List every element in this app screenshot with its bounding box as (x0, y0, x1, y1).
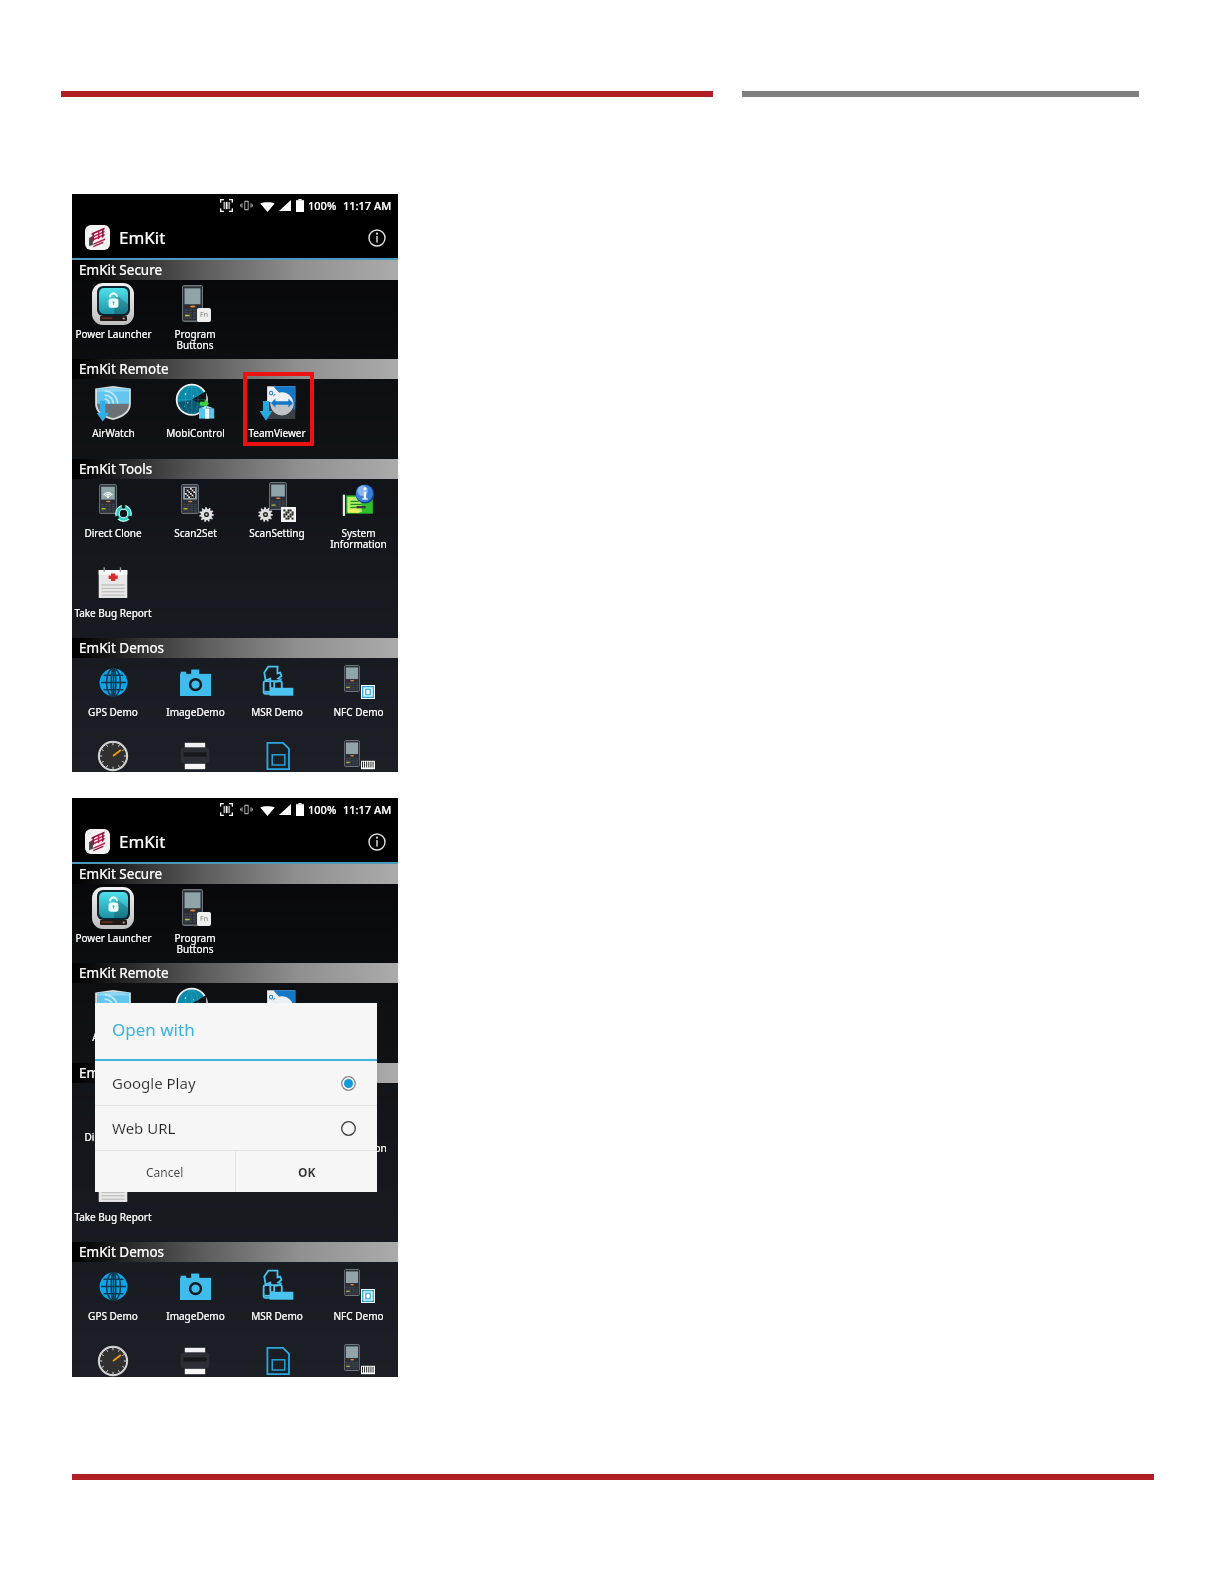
button[interactable]: MobiControl (154, 379, 236, 440)
button[interactable]: Scan Demo (318, 737, 398, 772)
button[interactable]: MSR Demo (236, 1262, 318, 1323)
button[interactable]: EmKit Tools (72, 459, 398, 479)
button[interactable]: Printer Demo (154, 1341, 236, 1377)
staticText: MSR Demo (251, 705, 303, 719)
staticText: EmKit Secure (79, 865, 163, 883)
button[interactable]: Sensor Demo (72, 1341, 154, 1377)
button[interactable]: Web URL (95, 1106, 377, 1150)
button[interactable]: SIM Demo (236, 737, 318, 772)
staticText: EmKit Remote (79, 964, 169, 982)
button[interactable]: Power Launcher (72, 280, 154, 341)
staticText: MobiControl (166, 1030, 225, 1044)
staticText: Web URL (112, 1118, 176, 1138)
button[interactable]: System Information (318, 479, 398, 551)
button[interactable]: AirWatch (72, 379, 154, 440)
button[interactable]: EmKit Secure (72, 864, 398, 884)
staticText: Cancel (146, 1164, 184, 1180)
staticText: Direct Clone (84, 1130, 142, 1144)
button[interactable]: AirWatch (72, 983, 154, 1044)
button[interactable]: Sensor Demo (72, 737, 154, 772)
button[interactable]: Google Play (95, 1061, 377, 1105)
button[interactable]: GPS Demo (72, 658, 154, 719)
staticText: TeamViewer (248, 426, 306, 440)
staticText: Open with (112, 1018, 195, 1041)
staticText: 100% (308, 802, 337, 817)
staticText: Scan2Set (174, 1130, 217, 1144)
staticText: AirWatch (92, 1030, 135, 1044)
staticText: 11:17 AM (343, 198, 392, 213)
staticText: EmKit Tools (79, 460, 153, 478)
staticText: Power Launcher (75, 327, 152, 341)
staticText: NFC Demo (333, 1309, 384, 1323)
staticText: GPS Demo (88, 705, 138, 719)
staticText: Scan2Set (174, 526, 217, 540)
staticText: Google Play (112, 1073, 196, 1093)
button[interactable]: Scan2Set (154, 479, 236, 540)
staticText: ImageDemo (166, 1309, 225, 1323)
button[interactable]: EmKit Demos (72, 638, 398, 658)
button[interactable]: ImageDemo (154, 1262, 236, 1323)
staticText: EmKit (119, 226, 166, 249)
button[interactable]: NFC Demo (318, 658, 398, 719)
staticText: 11:17 AM (343, 802, 392, 817)
button[interactable]: ImageDemo (154, 658, 236, 719)
button[interactable]: Power Launcher (72, 884, 154, 945)
button[interactable]: Program Buttons (154, 280, 236, 352)
button[interactable]: GPS Demo (72, 1262, 154, 1323)
staticText: Take Bug Report (74, 606, 152, 620)
staticText: Take Bug Report (74, 1210, 152, 1224)
button[interactable]: Scan2Set (154, 1083, 236, 1144)
button[interactable]: Take Bug Report (72, 559, 154, 620)
staticText: ScanSetting (249, 526, 305, 540)
staticText: 100% (308, 198, 337, 213)
staticText: AirWatch (92, 426, 135, 440)
button[interactable]: System Information (318, 1083, 398, 1155)
staticText: EmKit Demos (79, 1243, 165, 1261)
button[interactable]: Direct Clone (72, 479, 154, 540)
staticText: System Information (330, 526, 387, 551)
staticText: Fn (200, 914, 208, 924)
staticText: Program Buttons (174, 327, 216, 352)
staticText: System Information (330, 1130, 387, 1155)
staticText: EmKit Secure (79, 261, 163, 279)
button[interactable]: Info (364, 829, 390, 855)
button[interactable]: Program Buttons (154, 884, 236, 956)
button[interactable]: SIM Demo (236, 1341, 318, 1377)
button[interactable]: Take Bug Report (72, 1163, 154, 1224)
button[interactable]: EmKit Demos (72, 1242, 398, 1262)
staticText: MobiControl (166, 426, 225, 440)
button[interactable]: EmKit Remote (72, 963, 398, 983)
button[interactable]: Printer Demo (154, 737, 236, 772)
button[interactable]: TeamViewer (236, 379, 318, 440)
staticText: NFC Demo (333, 705, 384, 719)
button[interactable]: TeamViewer (236, 983, 318, 1044)
staticText: MSR Demo (251, 1309, 303, 1323)
button[interactable]: MobiControl (154, 983, 236, 1044)
button[interactable]: EmKit Secure (72, 260, 398, 280)
button[interactable]: ScanSetting (236, 479, 318, 540)
button[interactable]: OK (236, 1151, 377, 1192)
staticText: Program Buttons (174, 931, 216, 956)
staticText: Direct Clone (84, 526, 142, 540)
staticText: EmKit Demos (79, 639, 165, 657)
button[interactable]: Info (364, 225, 390, 251)
button[interactable]: Cancel (95, 1151, 235, 1192)
staticText: EmKit Remote (79, 360, 169, 378)
button[interactable]: MSR Demo (236, 658, 318, 719)
staticText: ImageDemo (166, 705, 225, 719)
button[interactable]: NFC Demo (318, 1262, 398, 1323)
staticText: Power Launcher (75, 931, 152, 945)
button[interactable]: Scan Demo (318, 1341, 398, 1377)
button[interactable]: EmKit Remote (72, 359, 398, 379)
button[interactable]: Direct Clone (72, 1083, 154, 1144)
staticText: EmKit Tools (79, 1064, 153, 1082)
staticText: EmKit (119, 830, 166, 853)
button[interactable]: EmKit Tools (72, 1063, 398, 1083)
staticText: Fn (200, 310, 208, 320)
staticText: GPS Demo (88, 1309, 138, 1323)
staticText: OK (298, 1164, 316, 1180)
